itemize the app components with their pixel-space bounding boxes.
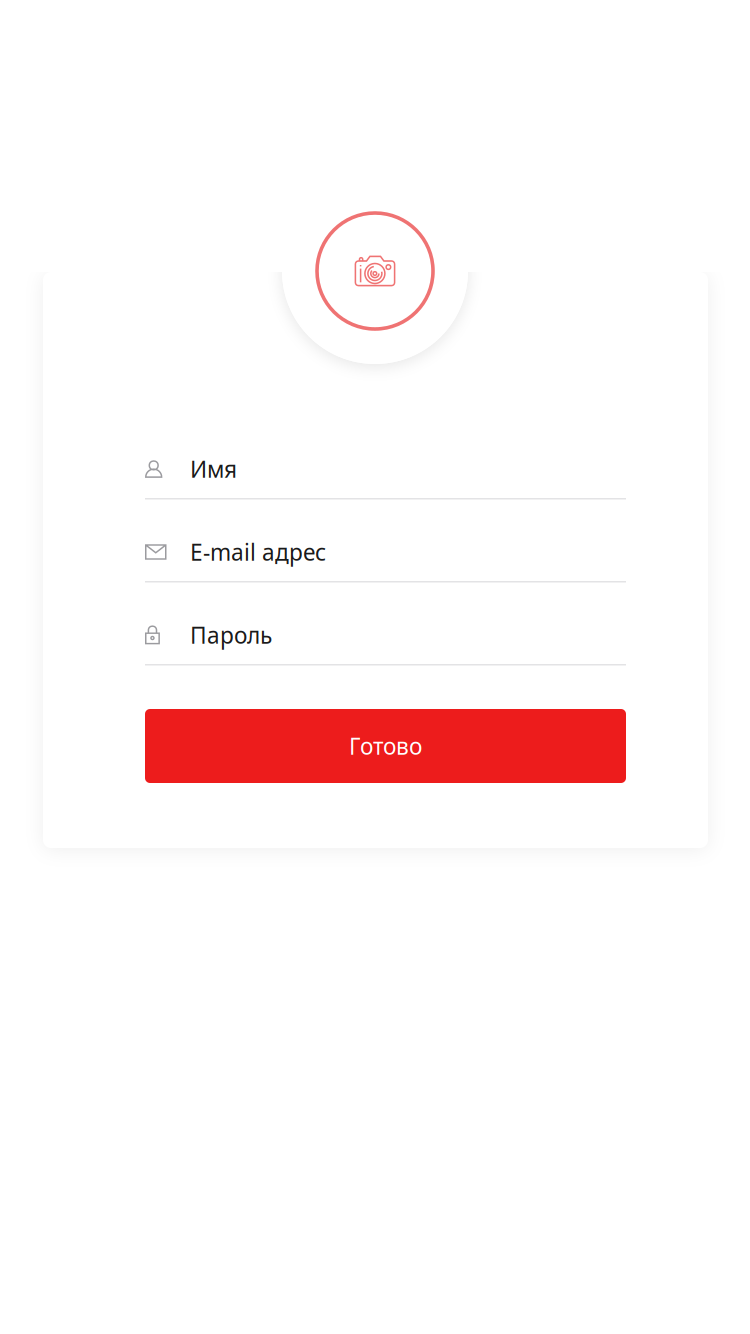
button[interactable]: E-mail адрес — [145, 521, 626, 582]
button[interactable]: Готово — [145, 709, 626, 783]
staticText: Пароль — [190, 620, 272, 650]
button[interactable]: Пароль — [145, 604, 626, 665]
button[interactable]: Имя — [145, 438, 626, 499]
button[interactable]: Добавить фотографию — [282, 178, 468, 364]
staticText: E-mail адрес — [190, 537, 326, 567]
staticText: Готово — [349, 731, 422, 761]
staticText: Имя — [190, 454, 237, 484]
